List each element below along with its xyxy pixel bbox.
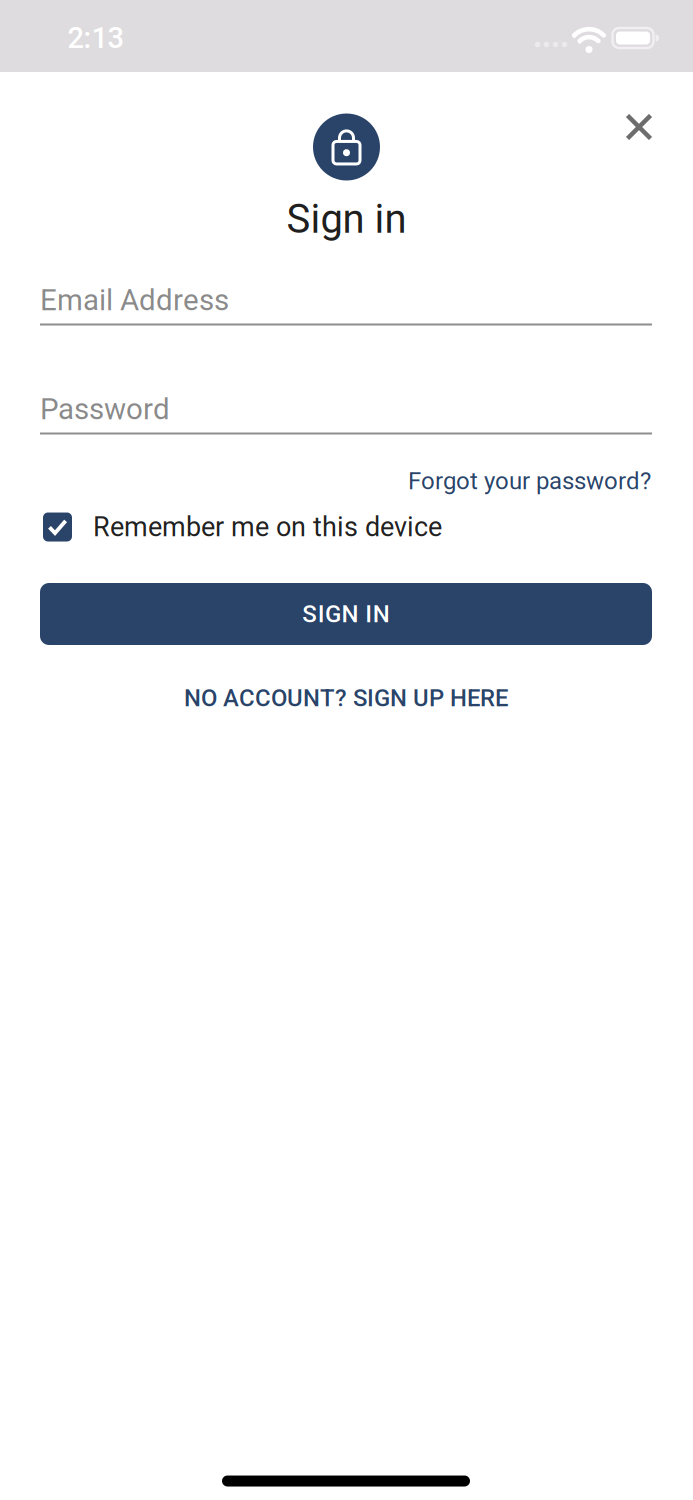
staticText: SIGN IN	[302, 600, 390, 628]
staticText: NO ACCOUNT? SIGN UP HERE	[184, 684, 508, 712]
button[interactable]: Remember me on this device	[43, 511, 693, 543]
staticText: Password	[40, 392, 170, 426]
staticText: 2:13	[67, 21, 123, 55]
staticText: Email Address	[40, 283, 229, 317]
button[interactable]: Forgot your password?	[408, 467, 651, 495]
button[interactable]: NO ACCOUNT? SIGN UP HERE	[126, 678, 566, 718]
button[interactable]: Email Address	[40, 263, 652, 325]
staticText: Forgot your password?	[408, 467, 651, 495]
button[interactable]: Password	[40, 372, 652, 434]
staticText: Remember me on this device	[93, 511, 442, 543]
button[interactable]: SIGN IN	[40, 583, 652, 645]
button[interactable]: Close	[617, 105, 661, 149]
staticText: Sign in	[286, 196, 406, 242]
